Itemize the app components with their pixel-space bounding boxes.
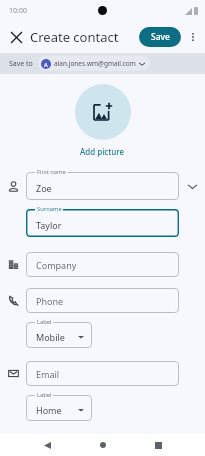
button[interactable]: A bbox=[38, 56, 150, 71]
button[interactable]: Company bbox=[26, 252, 179, 277]
button[interactable]: Label bbox=[26, 322, 92, 348]
staticText: A bbox=[44, 61, 48, 68]
button[interactable]: Recent apps bbox=[149, 436, 167, 454]
staticText: Create contact bbox=[30, 28, 119, 46]
button[interactable]: Phone bbox=[26, 288, 179, 313]
button[interactable]: Surname bbox=[26, 209, 179, 237]
staticText: Add picture bbox=[80, 146, 125, 157]
button[interactable]: Save bbox=[139, 27, 181, 47]
button[interactable]: Email bbox=[26, 361, 179, 386]
button[interactable]: Label bbox=[26, 395, 92, 421]
button[interactable]: Back bbox=[38, 436, 56, 454]
staticText: alan.jones.wm@gmail.com bbox=[54, 59, 136, 68]
button[interactable]: Home bbox=[94, 436, 112, 454]
staticText: Save to bbox=[9, 59, 33, 69]
staticText: Label bbox=[37, 391, 52, 399]
button[interactable]: Expand name fields bbox=[179, 172, 205, 200]
staticText: Label bbox=[37, 318, 52, 326]
staticText: Zoe bbox=[36, 182, 52, 194]
staticText: Company bbox=[36, 259, 77, 271]
staticText: Taylor bbox=[36, 219, 62, 231]
staticText: Phone bbox=[36, 295, 64, 307]
staticText: Email bbox=[36, 368, 60, 380]
staticText: Mobile bbox=[36, 331, 65, 343]
button[interactable]: First name bbox=[26, 172, 179, 200]
staticText: First name bbox=[37, 168, 66, 176]
staticText: Home bbox=[36, 404, 62, 416]
button[interactable]: Add picture bbox=[75, 84, 131, 140]
button[interactable]: Close bbox=[4, 25, 28, 49]
button[interactable]: More options bbox=[183, 27, 203, 47]
staticText: 10:00 bbox=[9, 6, 27, 16]
staticText: Surname bbox=[37, 205, 62, 213]
staticText: Save bbox=[151, 31, 170, 43]
